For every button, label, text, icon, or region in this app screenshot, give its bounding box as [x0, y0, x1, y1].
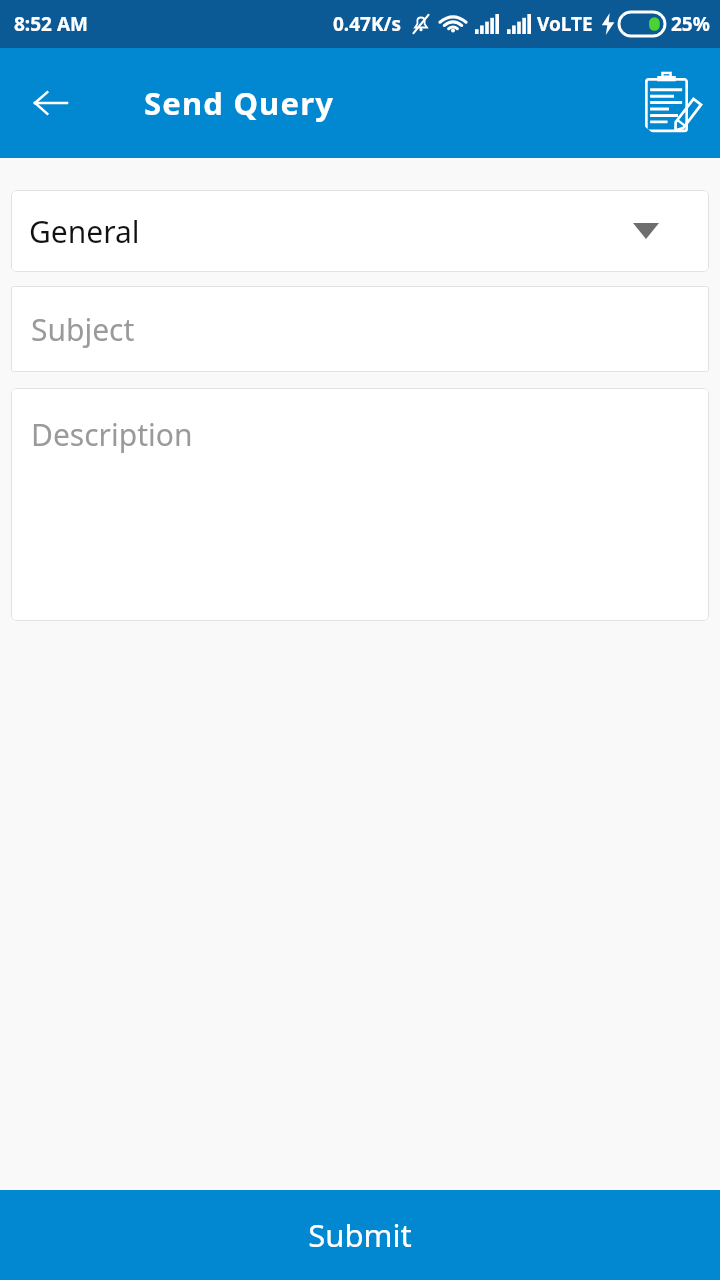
staticText: Submit [308, 1214, 412, 1256]
staticText: 8:52 AM [14, 11, 88, 37]
button[interactable]: Query list [636, 68, 706, 138]
button[interactable]: Description [11, 388, 709, 621]
button[interactable]: Submit [0, 1190, 720, 1280]
button[interactable]: General [11, 190, 709, 272]
staticText: 25% [671, 11, 710, 37]
staticText: VoLTE [537, 11, 593, 37]
staticText: 0.47K/s [333, 11, 401, 37]
staticText: Description [31, 414, 193, 455]
staticText: Subject [31, 309, 135, 350]
staticText: General [29, 211, 140, 252]
button[interactable]: Back [22, 75, 78, 131]
staticText: Send Query [144, 82, 335, 124]
button[interactable]: Subject [11, 286, 709, 372]
